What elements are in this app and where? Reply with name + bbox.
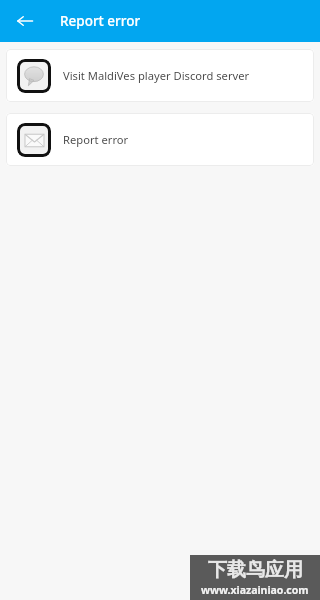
staticText: Report error [63,132,129,147]
staticText: 下载鸟应用 [208,558,303,582]
staticText: Report error [60,12,141,30]
button[interactable]: Back [11,7,39,35]
staticText: www.xiazainiao.com [201,583,309,597]
staticText: Visit MaldiVes player Discord server [63,68,250,83]
button[interactable]: Report error [6,113,314,166]
button[interactable]: Visit MaldiVes player Discord server [6,49,314,102]
